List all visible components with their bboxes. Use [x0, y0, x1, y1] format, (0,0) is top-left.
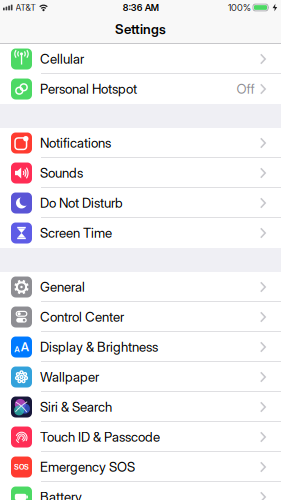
button[interactable]: Sounds	[0, 158, 281, 188]
button[interactable]: Siri & Search	[0, 392, 281, 422]
staticText: Wallpaper	[40, 369, 99, 385]
staticText: AT&T	[15, 2, 35, 13]
staticText: A	[14, 345, 20, 354]
staticText: General	[40, 279, 85, 295]
staticText: Battery	[40, 489, 82, 500]
button[interactable]: Do Not Disturb	[0, 188, 281, 218]
button[interactable]: Touch ID & Passcode	[0, 422, 281, 452]
staticText: Siri & Search	[40, 399, 112, 415]
button[interactable]: Wallpaper	[0, 362, 281, 392]
staticText: Personal Hotspot	[40, 81, 137, 97]
staticText: Do Not Disturb	[40, 195, 123, 211]
staticText: Touch ID & Passcode	[40, 429, 160, 445]
button[interactable]: Notifications	[0, 128, 281, 158]
button[interactable]: Cellular	[0, 44, 281, 74]
button[interactable]: Control Center	[0, 302, 281, 332]
button[interactable]: General	[0, 272, 281, 302]
button[interactable]: Screen Time	[0, 218, 281, 248]
staticText: Display & Brightness	[40, 339, 158, 355]
staticText: A	[21, 340, 29, 354]
button[interactable]: Battery	[0, 482, 281, 500]
staticText: Sounds	[40, 165, 83, 181]
button[interactable]: A	[0, 332, 281, 362]
staticText: Notifications	[40, 135, 111, 151]
staticText: Off	[236, 81, 254, 97]
staticText: Settings	[115, 21, 166, 37]
staticText: Control Center	[40, 309, 124, 325]
button[interactable]: Personal Hotspot	[0, 74, 281, 104]
staticText: SOS	[14, 463, 29, 471]
staticText: Cellular	[40, 51, 84, 67]
staticText: Screen Time	[40, 225, 112, 241]
staticText: 100%	[228, 2, 251, 13]
staticText: 8:36 AM	[123, 2, 159, 13]
staticText: Emergency SOS	[40, 459, 135, 475]
button[interactable]: SOS	[0, 452, 281, 482]
